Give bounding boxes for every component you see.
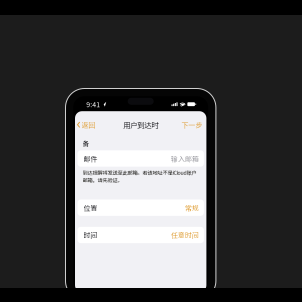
staticText: 输入邮箱: [171, 153, 199, 163]
staticText: 时间: [83, 230, 97, 240]
button[interactable]: 位置: [77, 199, 204, 216]
staticText: 到达提醒将发送至此邮箱。若该地址不是iCloud账户邮箱，请先验证。: [82, 169, 196, 184]
staticText: 9:41: [86, 99, 100, 109]
staticText: 任意时间: [171, 230, 199, 240]
staticText: 下一步: [181, 120, 202, 130]
staticText: 位置: [83, 203, 97, 213]
button[interactable]: 时间: [77, 227, 204, 243]
staticText: 用户到达时: [123, 119, 158, 130]
staticText: 常规: [185, 203, 199, 213]
staticText: 备: [82, 138, 89, 148]
button[interactable]: 邮件: [77, 150, 204, 167]
staticText: 返回: [82, 120, 96, 130]
staticText: 邮件: [83, 153, 97, 163]
button[interactable]: 返回: [77, 117, 96, 133]
button[interactable]: 下一步: [181, 117, 202, 133]
